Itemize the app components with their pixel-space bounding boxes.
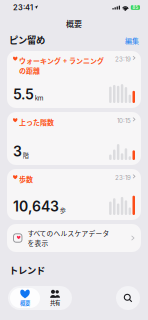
- staticText: 歩: [60, 205, 66, 214]
- staticText: 共有: [50, 299, 60, 306]
- staticText: 3: [13, 143, 22, 160]
- staticText: ウォーキング + ランニング の距離: [19, 55, 104, 76]
- staticText: 23:19: [115, 174, 131, 181]
- button[interactable]: すべてのヘルスケアデータ: [7, 224, 141, 252]
- staticText: 階: [23, 150, 29, 159]
- button[interactable]: 共有: [40, 288, 70, 308]
- staticText: 歩数: [19, 174, 33, 184]
- staticText: 概要: [20, 299, 30, 307]
- staticText: 23:19: [115, 55, 131, 63]
- staticText: 編集: [125, 35, 139, 45]
- button[interactable]: ウォーキング + ランニング の距離: [7, 51, 141, 108]
- staticText: 85: [133, 5, 139, 10]
- staticText: 10:15: [117, 117, 131, 124]
- staticText: ピン留め: [9, 33, 45, 46]
- staticText: km: [35, 93, 44, 102]
- staticText: トレンド: [9, 263, 45, 276]
- staticText: 10,643: [13, 198, 59, 215]
- button[interactable]: 概要: [10, 288, 40, 308]
- button[interactable]: 上った階数: [7, 112, 141, 165]
- button[interactable]: 編集: [125, 35, 139, 46]
- button[interactable]: 検索: [116, 286, 140, 310]
- button[interactable]: 歩数: [7, 169, 141, 220]
- staticText: すべてのヘルスケアデータ: [27, 228, 109, 238]
- staticText: 上った階数: [19, 117, 54, 127]
- staticText: 概要: [66, 18, 82, 29]
- staticText: 23:41: [13, 3, 33, 12]
- staticText: を表示: [27, 238, 48, 248]
- staticText: 5.5: [13, 86, 34, 103]
